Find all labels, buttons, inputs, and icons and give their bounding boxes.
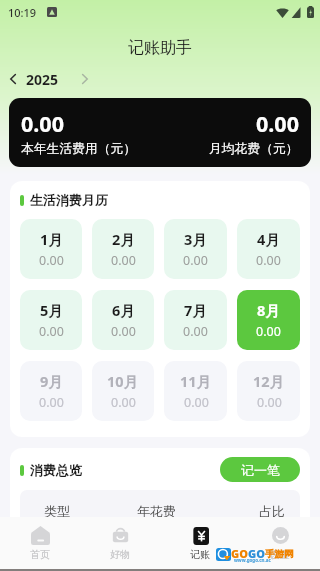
button[interactable]: 记账 (160, 517, 240, 569)
staticText: 0.00 (39, 252, 64, 269)
button[interactable]: 0.00 (9, 98, 311, 167)
staticText: 0.00 (184, 394, 209, 411)
staticText: 本年生活费用（元） (21, 141, 137, 157)
staticText: 2025 (26, 70, 59, 89)
button[interactable]: 3月 (164, 219, 227, 279)
staticText: 7月 (184, 300, 207, 320)
staticText: 0.00 (183, 323, 208, 340)
button[interactable]: 设置 (240, 517, 320, 569)
staticText: 0.00 (256, 323, 281, 340)
staticText: 0.00 (111, 252, 136, 269)
button[interactable]: 2月 (92, 219, 154, 279)
button[interactable]: 4月 (237, 219, 300, 279)
button[interactable]: 6月 (92, 290, 154, 350)
staticText: 0.00 (39, 394, 64, 411)
button[interactable]: 8月 (237, 290, 300, 350)
staticText: 消费总览 (30, 462, 82, 478)
button[interactable]: 9月 (20, 361, 82, 421)
staticText: 8月 (257, 300, 280, 320)
staticText: GO (248, 546, 265, 561)
staticText: 手游网 (265, 548, 294, 560)
staticText: 生活消费月历 (30, 192, 108, 208)
staticText: 10:19 (8, 5, 37, 20)
staticText: 4月 (257, 229, 280, 249)
staticText: 5月 (40, 300, 63, 320)
staticText: www.gogo.cn.ac (234, 557, 271, 563)
button[interactable]: 5月 (20, 290, 82, 350)
staticText: 0.00 (21, 109, 64, 138)
button[interactable]: 12月 (237, 361, 300, 421)
staticText: GO (231, 546, 248, 561)
staticText: 首页 (30, 548, 50, 561)
staticText: 设置 (270, 548, 290, 561)
staticText: 2月 (112, 229, 135, 249)
button[interactable]: 1月 (20, 219, 82, 279)
staticText: 0.00 (39, 323, 64, 340)
staticText: 10月 (107, 371, 139, 391)
button[interactable]: Previous year (5, 71, 21, 87)
button[interactable]: 首页 (0, 517, 80, 569)
staticText: 占比 (259, 503, 285, 519)
staticText: 0.00 (257, 394, 282, 411)
button[interactable]: 7月 (164, 290, 227, 350)
staticText: 6月 (112, 300, 135, 320)
staticText: 年花费 (137, 503, 176, 519)
staticText: 记账 (190, 548, 210, 561)
staticText: 1月 (40, 229, 63, 249)
staticText: 0.00 (183, 252, 208, 269)
staticText: 12月 (253, 371, 285, 391)
staticText: 0.00 (256, 109, 299, 138)
staticText: 3月 (184, 229, 207, 249)
button[interactable]: 记一笔 (220, 457, 300, 482)
button[interactable]: 10月 (92, 361, 154, 421)
staticText: 好物 (110, 548, 130, 561)
button[interactable]: 11月 (164, 361, 227, 421)
staticText: 0.00 (256, 252, 281, 269)
staticText: 0.00 (111, 394, 136, 411)
button[interactable]: 好物 (80, 517, 160, 569)
staticText: 类型 (44, 503, 70, 519)
staticText: 11月 (180, 371, 212, 391)
staticText: 记账助手 (128, 38, 192, 58)
staticText: 记一笔 (241, 462, 280, 478)
button[interactable]: Next year (77, 71, 93, 87)
staticText: 9月 (40, 371, 63, 391)
staticText: 0.00 (111, 323, 136, 340)
staticText: 月均花费（元） (209, 141, 299, 157)
